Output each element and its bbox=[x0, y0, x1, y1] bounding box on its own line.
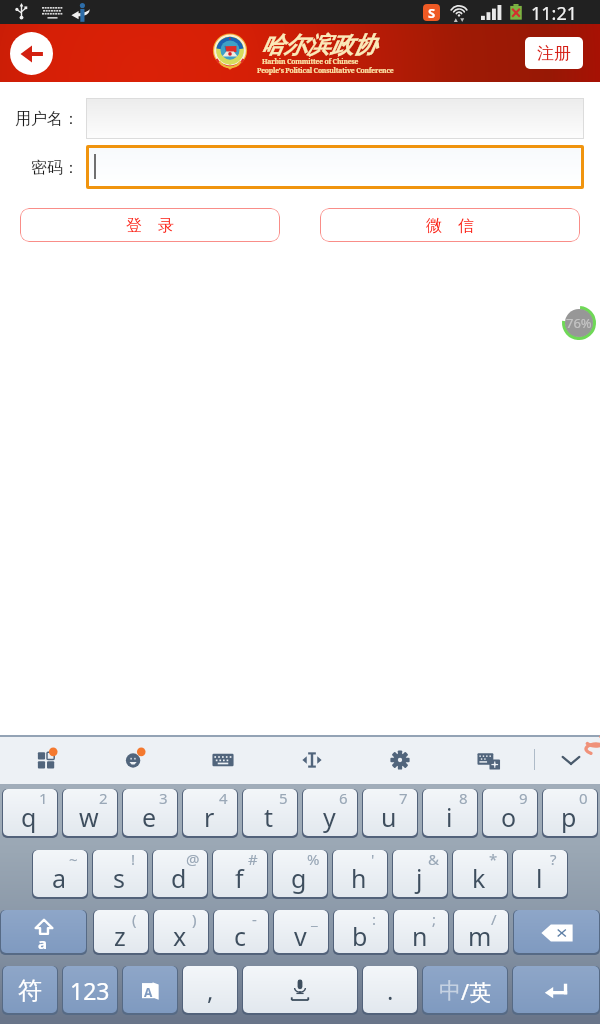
button[interactable]: Chinese English toggle bbox=[423, 966, 507, 1013]
staticText: # bbox=[248, 849, 258, 869]
staticText: r bbox=[204, 800, 215, 834]
button[interactable] bbox=[183, 789, 237, 836]
staticText: a bbox=[52, 861, 67, 895]
staticText: 注册 bbox=[537, 43, 571, 64]
button[interactable] bbox=[3, 789, 57, 836]
staticText: 中 bbox=[439, 977, 461, 1005]
staticText: /英 bbox=[461, 976, 492, 1006]
button[interactable]: Emoji bbox=[113, 747, 157, 773]
button[interactable] bbox=[423, 789, 477, 836]
staticText: 5 bbox=[279, 788, 288, 808]
button[interactable] bbox=[363, 789, 417, 836]
staticText: y bbox=[323, 800, 336, 834]
button[interactable]: Hide keyboard bbox=[556, 745, 586, 775]
button[interactable] bbox=[94, 910, 148, 953]
button[interactable]: 注册 bbox=[525, 37, 583, 69]
staticText: : bbox=[372, 909, 377, 929]
button[interactable] bbox=[394, 910, 448, 953]
staticText: 0 bbox=[579, 788, 588, 808]
staticText: 11:21 bbox=[531, 1, 578, 25]
button[interactable]: Keyboard layout bbox=[201, 747, 245, 773]
button[interactable]: Period bbox=[363, 966, 417, 1013]
staticText: o bbox=[501, 800, 517, 834]
button[interactable] bbox=[154, 910, 208, 953]
button[interactable] bbox=[274, 910, 328, 953]
staticText: m bbox=[468, 919, 492, 953]
button[interactable] bbox=[63, 789, 117, 836]
button[interactable] bbox=[93, 850, 147, 897]
staticText: 密码： bbox=[31, 158, 79, 178]
staticText: _ bbox=[311, 909, 318, 929]
button[interactable] bbox=[243, 789, 297, 836]
staticText: a bbox=[38, 933, 47, 953]
button[interactable] bbox=[513, 850, 567, 897]
staticText: j bbox=[416, 861, 423, 895]
staticText: h bbox=[351, 861, 367, 895]
staticText: k bbox=[472, 861, 486, 895]
staticText: 用户名： bbox=[15, 109, 79, 129]
button[interactable]: Dictionary bbox=[123, 966, 177, 1013]
button[interactable] bbox=[393, 850, 447, 897]
button[interactable]: 微 信 bbox=[320, 208, 580, 242]
staticText: x bbox=[173, 919, 187, 953]
staticText: People's Political Consultative Conferen… bbox=[257, 66, 394, 75]
button[interactable] bbox=[483, 789, 537, 836]
staticText: u bbox=[381, 800, 397, 834]
button[interactable]: Numbers bbox=[63, 966, 117, 1013]
button[interactable]: 登 录 bbox=[20, 208, 280, 242]
staticText: 7 bbox=[399, 788, 408, 808]
button[interactable]: Back bbox=[10, 32, 53, 75]
staticText: & bbox=[428, 849, 439, 869]
button[interactable] bbox=[86, 98, 584, 139]
staticText: ? bbox=[550, 849, 557, 869]
button[interactable] bbox=[543, 789, 597, 836]
staticText: p bbox=[561, 800, 577, 834]
staticText: ~ bbox=[69, 849, 78, 869]
staticText: ( bbox=[132, 909, 137, 929]
button[interactable] bbox=[273, 850, 327, 897]
staticText: g bbox=[291, 861, 307, 895]
button[interactable] bbox=[123, 789, 177, 836]
button[interactable]: Enter bbox=[513, 966, 599, 1013]
staticText: f bbox=[235, 861, 244, 895]
button[interactable]: Space / voice input bbox=[243, 966, 357, 1013]
staticText: , bbox=[207, 974, 214, 1007]
button[interactable]: Comma bbox=[183, 966, 237, 1013]
button[interactable] bbox=[153, 850, 207, 897]
staticText: c bbox=[234, 919, 247, 953]
button[interactable]: Battery 76 percent bbox=[565, 309, 593, 337]
button[interactable]: Settings bbox=[378, 747, 422, 773]
button[interactable] bbox=[334, 910, 388, 953]
staticText: 4 bbox=[219, 788, 228, 808]
staticText: v bbox=[294, 919, 307, 953]
button[interactable]: Backspace bbox=[514, 910, 599, 953]
staticText: ! bbox=[131, 849, 136, 869]
button[interactable] bbox=[303, 789, 357, 836]
button[interactable]: Symbols bbox=[3, 966, 57, 1013]
button[interactable] bbox=[453, 850, 507, 897]
button[interactable]: Move cursor bbox=[290, 747, 334, 773]
button[interactable]: Shift bbox=[1, 910, 86, 953]
staticText: 8 bbox=[459, 788, 468, 808]
staticText: * bbox=[489, 849, 498, 869]
staticText: @ bbox=[186, 849, 200, 869]
staticText: 76% bbox=[566, 314, 592, 332]
staticText: 6 bbox=[339, 788, 348, 808]
staticText: w bbox=[79, 800, 99, 834]
staticText: 1 bbox=[39, 788, 48, 808]
staticText: / bbox=[491, 909, 497, 929]
staticText: 123 bbox=[70, 975, 110, 1006]
button[interactable] bbox=[454, 910, 508, 953]
button[interactable] bbox=[214, 910, 268, 953]
button[interactable] bbox=[213, 850, 267, 897]
staticText: t bbox=[264, 800, 274, 834]
button[interactable] bbox=[333, 850, 387, 897]
button[interactable]: More bbox=[467, 747, 511, 773]
staticText: ' bbox=[371, 849, 375, 869]
staticText: 符 bbox=[18, 976, 42, 1006]
staticText: 登 录 bbox=[126, 214, 174, 236]
button[interactable] bbox=[89, 148, 581, 186]
button[interactable] bbox=[33, 850, 87, 897]
staticText: ) bbox=[192, 909, 197, 929]
button[interactable]: Apps bbox=[25, 747, 69, 773]
